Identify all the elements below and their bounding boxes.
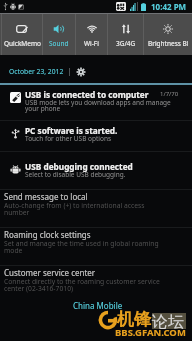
button[interactable]: USB is connected to computer [0,85,192,120]
button[interactable]: Send message to local [0,190,192,227]
button[interactable]: Customer service center [0,266,192,299]
staticText: Set and manage the time used in global r… [4,239,159,255]
staticText: Roaming clock settings [4,229,91,240]
staticText: China Mobile [73,300,123,311]
staticText: 机锋 [117,309,151,330]
staticText: USB mode lets you download apps and mana… [25,98,171,113]
staticText: PC software is started. [25,125,118,136]
button[interactable]: Brightness Bl [144,13,192,55]
staticText: Connect directly to the roaming customer… [4,277,160,293]
button[interactable]: USB debugging connected [0,152,192,189]
staticText: USB debugging connected [25,161,133,172]
staticText: Sound [49,39,69,48]
button[interactable]: Sound [43,13,75,55]
staticText: 10:42 PM [151,1,187,12]
staticText: Auto-change from (+) to international ac… [4,201,145,217]
button[interactable]: QuickMemo [2,13,42,55]
staticText: 1/7/70 [160,90,179,98]
staticText: Touch for other USB options [25,134,112,143]
button[interactable]: PC software is started. [0,121,192,151]
staticText: Send message to local [4,191,88,202]
staticText: 3G/4G [116,39,136,48]
button[interactable]: 3G/4G [108,13,143,55]
button[interactable]: Roaming clock settings [0,228,192,265]
staticText: QuickMemo [4,39,41,48]
button[interactable]: Settings [75,66,86,77]
staticText: Customer service center [4,267,96,278]
staticText: 论坛 [152,312,184,332]
staticText: Brightness Bl [148,39,189,48]
staticText: October 23, 2012 [9,67,64,76]
staticText: BBS.GFAN.COM [115,326,186,339]
staticText: Wi-Fi [84,39,99,48]
staticText: Select to disable USB debugging. [25,170,126,179]
button[interactable]: Wi-Fi [76,13,107,55]
staticText: USB is connected to computer [25,89,149,100]
